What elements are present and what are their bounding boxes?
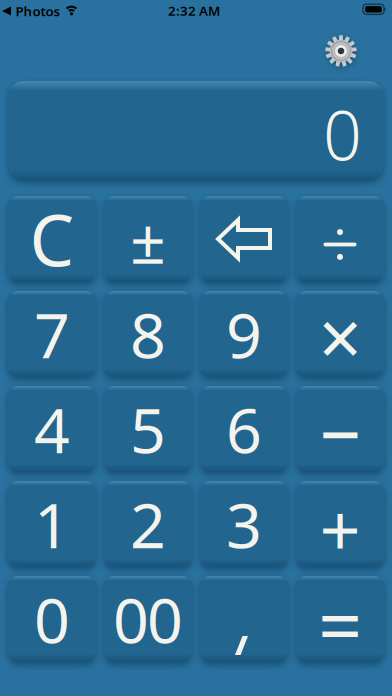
button[interactable]: = xyxy=(296,576,384,662)
button[interactable]: 9 xyxy=(200,291,288,377)
button[interactable]: 8 xyxy=(104,291,192,377)
staticText: 5 xyxy=(130,387,166,471)
staticText: = xyxy=(318,573,362,675)
button[interactable] xyxy=(200,196,288,282)
button[interactable]: 7 xyxy=(8,291,96,377)
staticText: − xyxy=(319,385,360,480)
button[interactable]: 0 xyxy=(8,576,96,662)
button[interactable] xyxy=(296,196,384,282)
button[interactable]: − xyxy=(296,386,384,472)
staticText: C xyxy=(29,192,74,286)
staticText: 6 xyxy=(226,387,262,471)
button[interactable]: 5 xyxy=(104,386,192,472)
staticText: 9 xyxy=(226,292,262,376)
staticText: × xyxy=(318,286,361,387)
button[interactable]: C xyxy=(8,196,96,282)
button[interactable]: ± xyxy=(104,196,192,282)
staticText: 2:32 AM xyxy=(168,2,220,19)
button[interactable]: 6 xyxy=(200,386,288,472)
staticText: 0 xyxy=(323,89,362,179)
staticText: 2 xyxy=(130,482,166,566)
staticText: + xyxy=(319,481,360,576)
staticText: 8 xyxy=(130,292,166,376)
staticText: 0 xyxy=(34,577,70,661)
button[interactable]: Photos xyxy=(2,2,60,20)
staticText: Photos xyxy=(15,2,60,20)
button[interactable]: 2 xyxy=(104,481,192,567)
button[interactable] xyxy=(324,34,358,68)
button[interactable]: 3 xyxy=(200,481,288,567)
staticText: 3 xyxy=(226,482,262,566)
button[interactable]: 1 xyxy=(8,481,96,567)
button[interactable]: 4 xyxy=(8,386,96,472)
staticText: 4 xyxy=(34,387,70,471)
button[interactable]: + xyxy=(296,481,384,567)
button[interactable]: × xyxy=(296,291,384,377)
staticText: 1 xyxy=(34,482,70,566)
button[interactable] xyxy=(200,576,288,662)
staticText: ± xyxy=(130,198,166,281)
button[interactable]: 00 xyxy=(104,576,192,662)
staticText: 00 xyxy=(113,577,183,661)
staticText: 7 xyxy=(34,292,70,376)
